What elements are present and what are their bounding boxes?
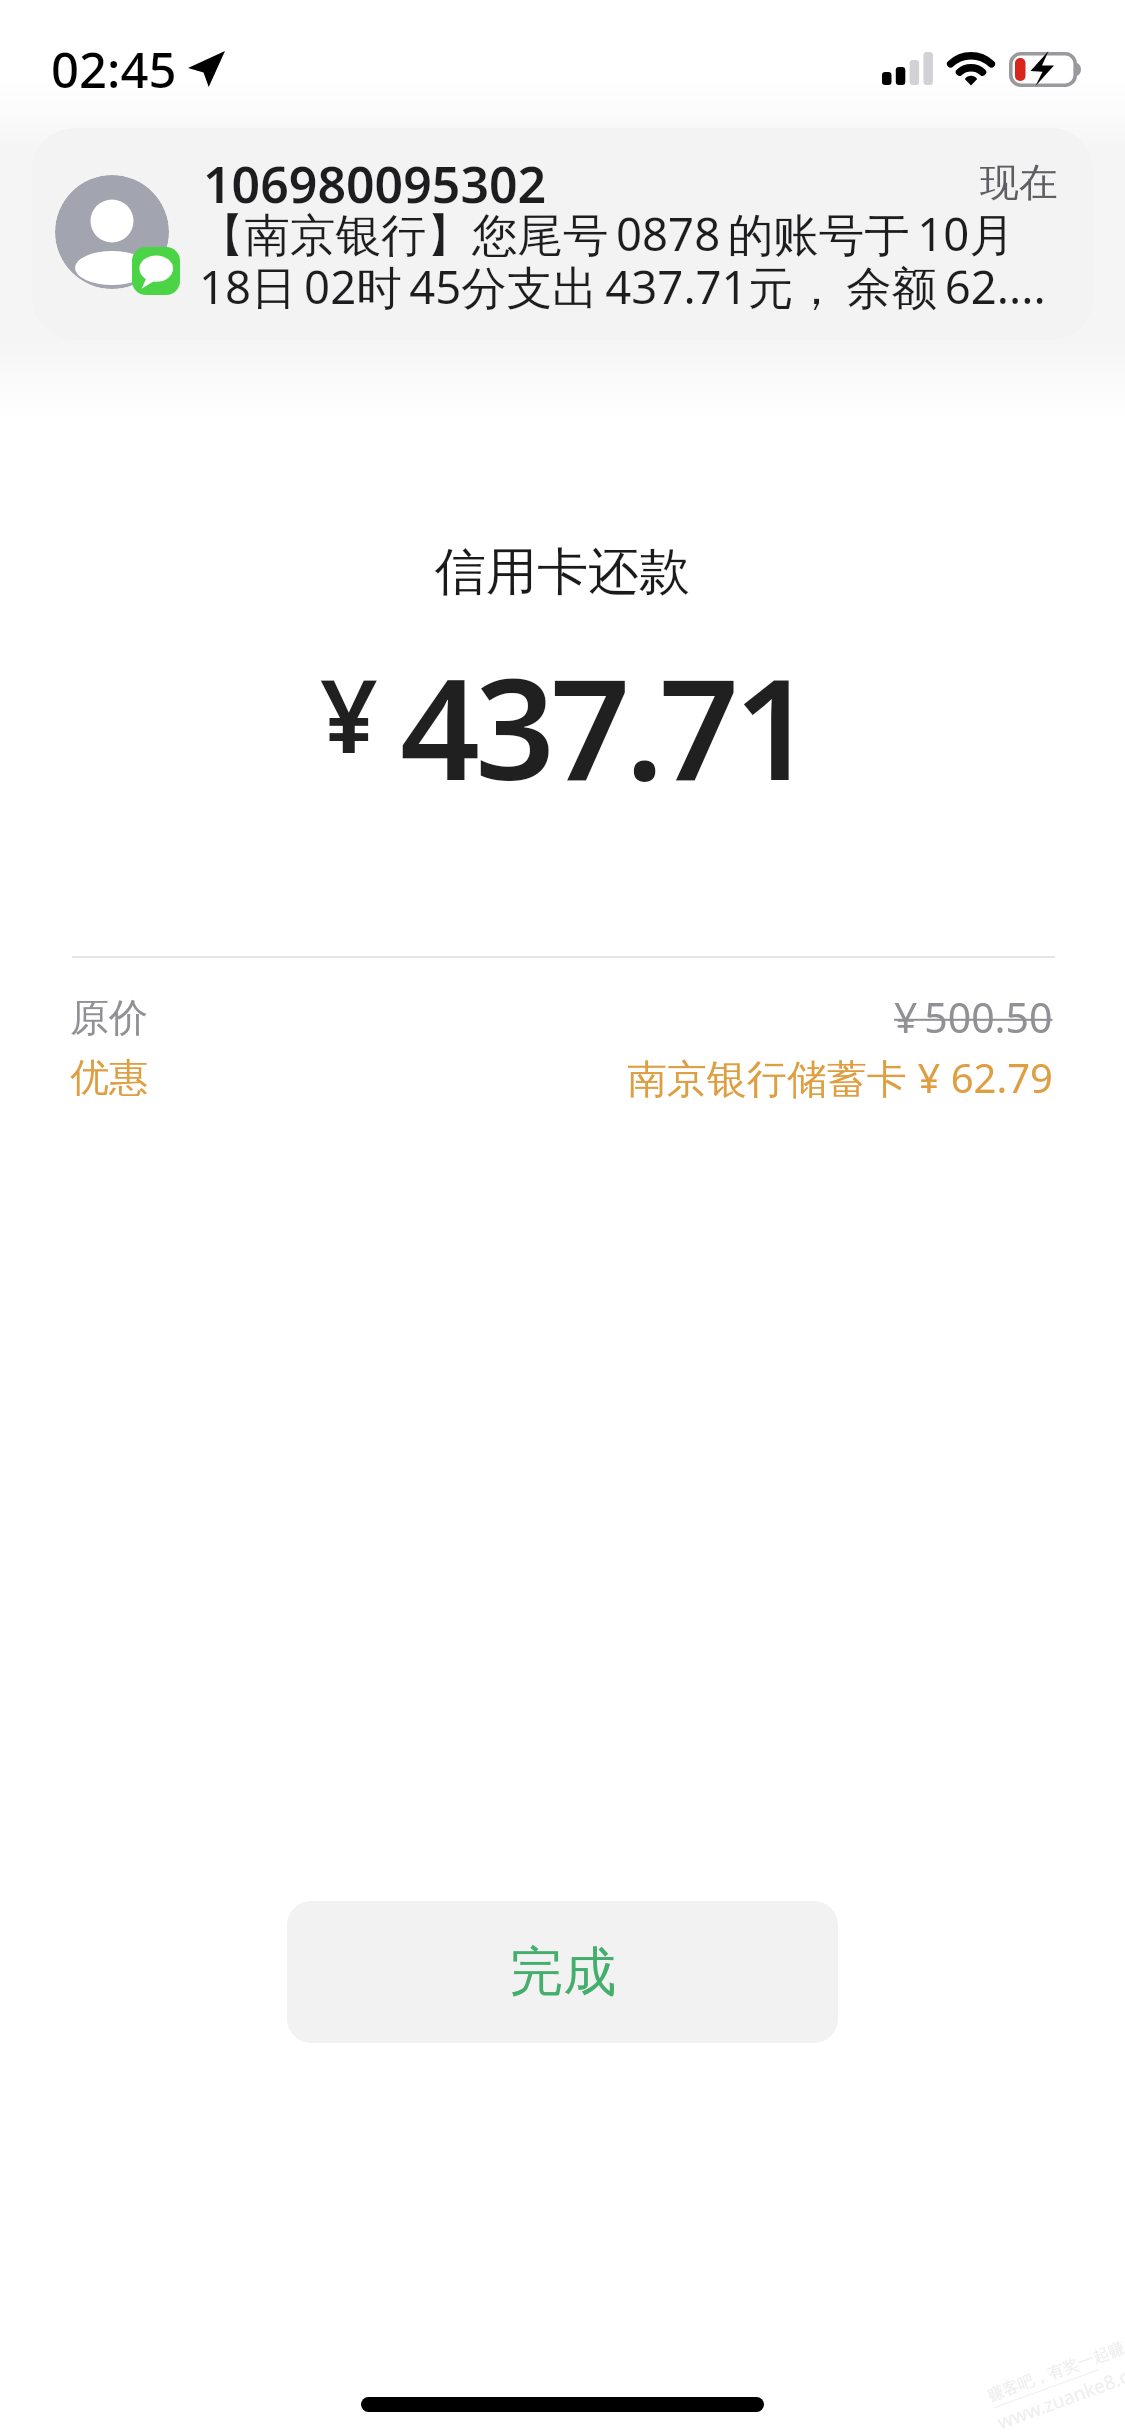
staticText: 18日 02时 45分支出 437.71元， 余额 62.... — [199, 255, 1046, 317]
other: Home indicator — [361, 2397, 764, 2412]
staticText: 02:45 — [51, 36, 177, 103]
button[interactable]: 106980095302 — [32, 128, 1093, 340]
staticText: ¥ — [320, 645, 378, 783]
staticText: 优惠 — [70, 1053, 148, 1102]
staticText: 原价 — [70, 993, 148, 1042]
staticText: www.zuanke8.com — [994, 2353, 1125, 2435]
staticText: 【南京银行】您尾号 0878 的账号于 10月 — [199, 202, 1015, 264]
staticText: 完成 — [510, 1939, 616, 2006]
button[interactable]: 完成 — [287, 1901, 838, 2043]
staticText: 106980095302 — [203, 150, 547, 218]
staticText: 现在 — [980, 158, 1058, 207]
staticText: 437.71 — [400, 630, 810, 821]
staticText: 赚客吧，有奖一起赚！ — [985, 2332, 1125, 2406]
staticText: 南京银行储蓄卡 ¥ 62.79 — [627, 1050, 1053, 1105]
staticText: 信用卡还款 — [435, 540, 690, 604]
staticText: ¥ 500.50 — [894, 989, 1053, 1045]
